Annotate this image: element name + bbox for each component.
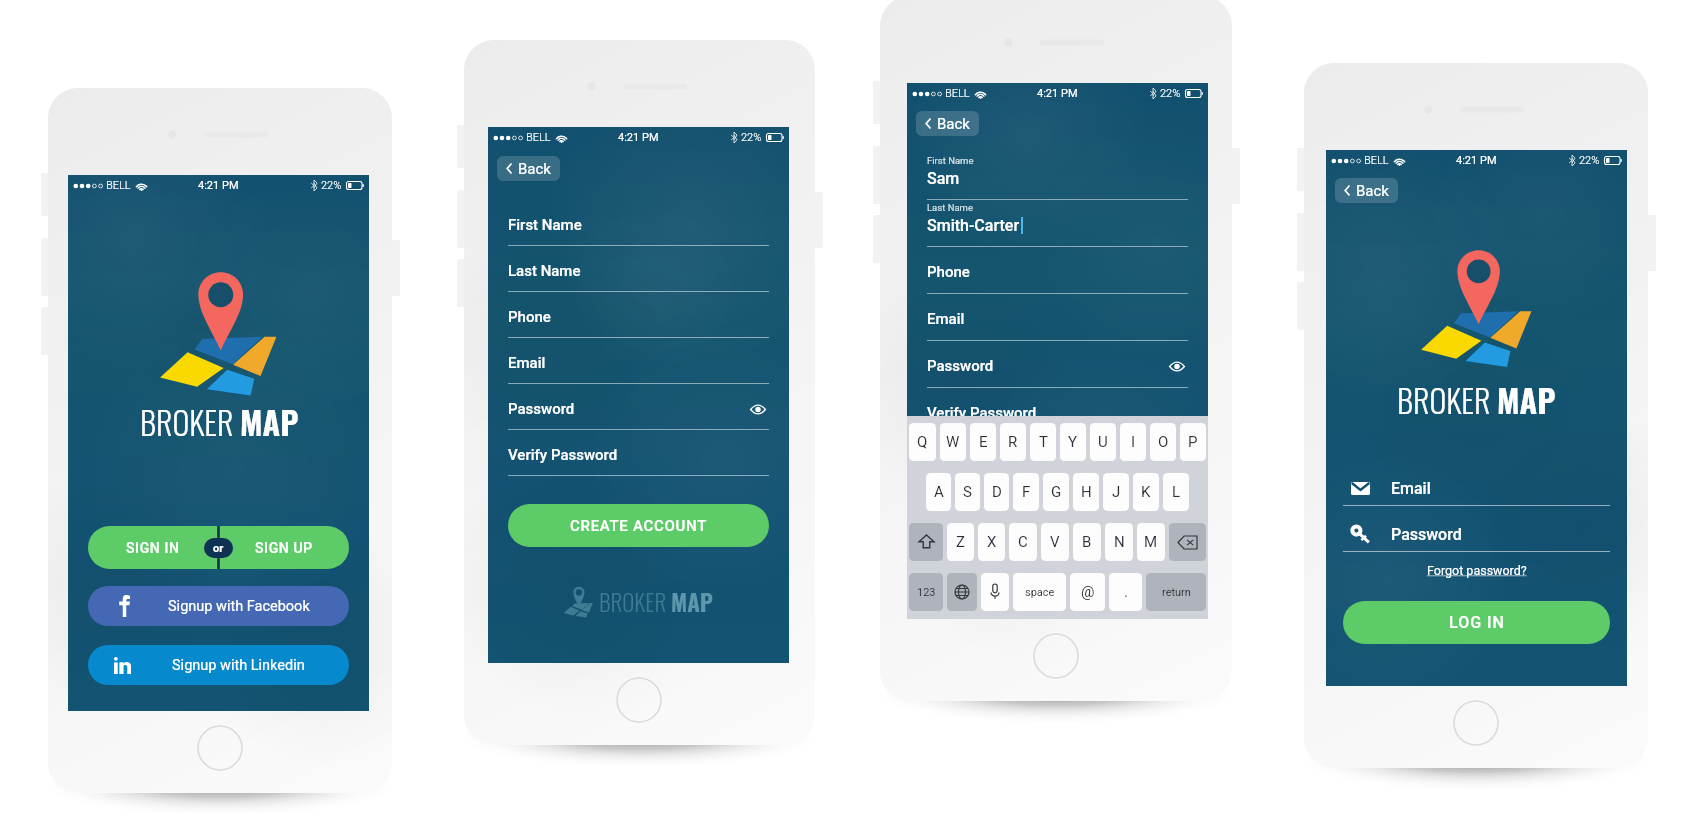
button[interactable]: .	[1109, 573, 1142, 611]
staticText: E	[979, 433, 988, 451]
staticText: First Name	[508, 216, 582, 234]
button[interactable]: Back	[1335, 178, 1398, 203]
staticText: Phone	[508, 308, 551, 326]
button[interactable]: Backspace	[1169, 523, 1206, 561]
staticText: R	[1008, 433, 1018, 451]
button[interactable]: H	[1073, 473, 1099, 511]
button[interactable]: I	[1120, 423, 1146, 461]
button[interactable]: L	[1163, 473, 1189, 511]
button[interactable]: D	[984, 473, 1009, 511]
button[interactable]: Password	[927, 341, 1188, 388]
staticText: Last Name	[508, 262, 581, 280]
button[interactable]: Phone	[927, 247, 1188, 294]
button[interactable]: Signup with Facebook	[88, 586, 349, 626]
button[interactable]: Phone	[508, 292, 769, 338]
staticText: CREATE ACCOUNT	[570, 517, 708, 535]
button[interactable]: C	[1009, 523, 1037, 561]
staticText: S	[963, 483, 972, 501]
button[interactable]: S	[955, 473, 980, 511]
button[interactable]: U	[1090, 423, 1116, 461]
button[interactable]: Email	[1343, 471, 1610, 506]
button[interactable]: K	[1133, 473, 1159, 511]
staticText: Z	[956, 533, 965, 551]
staticText: Back	[1356, 182, 1389, 200]
staticText: U	[1098, 433, 1108, 451]
button[interactable]: 123	[909, 573, 943, 611]
button[interactable]: N	[1105, 523, 1133, 561]
staticText: 4:21 PM	[618, 131, 659, 144]
button[interactable]: First Name	[927, 153, 1188, 200]
staticText: BROKER	[1397, 376, 1497, 423]
button[interactable]: G	[1043, 473, 1069, 511]
staticText: LOG IN	[1449, 613, 1505, 632]
staticText: Y	[1068, 433, 1078, 451]
staticText: Email	[1391, 479, 1431, 498]
button[interactable]: return	[1146, 573, 1206, 611]
button[interactable]: CREATE ACCOUNT	[508, 504, 769, 547]
staticText: I	[1131, 433, 1136, 451]
button[interactable]: SIGN IN	[88, 526, 218, 569]
button[interactable]: Signup with Linkedin	[88, 645, 349, 685]
staticText: 22%	[1579, 154, 1600, 167]
button[interactable]: Verify Password	[508, 430, 769, 476]
button[interactable]: Dictate	[981, 573, 1009, 611]
button[interactable]: space	[1013, 573, 1066, 611]
button[interactable]: Y	[1060, 423, 1086, 461]
staticText: J	[1112, 483, 1121, 501]
staticText: V	[1050, 533, 1060, 551]
button[interactable]: T	[1030, 423, 1056, 461]
staticText: 22%	[321, 179, 342, 192]
staticText: B	[1082, 533, 1092, 551]
staticText: K	[1141, 483, 1151, 501]
staticText: .	[1124, 583, 1128, 601]
button[interactable]: F	[1013, 473, 1039, 511]
staticText: L	[1172, 483, 1181, 501]
button[interactable]: Z	[947, 523, 974, 561]
button[interactable]: First Name	[508, 200, 769, 246]
button[interactable]: Back	[916, 111, 979, 136]
button[interactable]: LOG IN	[1343, 601, 1610, 644]
staticText: T	[1039, 433, 1048, 451]
button[interactable]: V	[1041, 523, 1069, 561]
button[interactable]: J	[1103, 473, 1129, 511]
staticText: X	[987, 533, 997, 551]
staticText: O	[1158, 433, 1169, 451]
button[interactable]: @	[1070, 573, 1105, 611]
button[interactable]: X	[978, 523, 1005, 561]
button[interactable]: Last Name	[508, 246, 769, 292]
staticText: Phone	[927, 263, 970, 281]
staticText: C	[1018, 533, 1028, 551]
button[interactable]: SIGN UP	[218, 526, 349, 569]
staticText: First Name	[927, 155, 974, 166]
staticText: BELL	[945, 87, 970, 100]
staticText: Password	[1391, 525, 1462, 544]
button[interactable]: O	[1150, 423, 1176, 461]
button[interactable]: W	[940, 423, 966, 461]
button[interactable]: B	[1073, 523, 1101, 561]
button[interactable]: Email	[927, 294, 1188, 341]
button[interactable]: Password	[1343, 517, 1610, 552]
button[interactable]: Email	[508, 338, 769, 384]
button[interactable]: Q	[909, 423, 936, 461]
button[interactable]: A	[926, 473, 951, 511]
button[interactable]: Last Name	[927, 200, 1188, 247]
button[interactable]: Password	[508, 384, 769, 430]
staticText: BROKER	[599, 585, 671, 619]
button[interactable]: E	[970, 423, 996, 461]
button[interactable]: R	[1000, 423, 1026, 461]
button[interactable]: M	[1137, 523, 1165, 561]
button[interactable]: Switch keyboard language	[947, 573, 977, 611]
staticText: BELL	[106, 179, 131, 192]
button[interactable]: Back	[497, 156, 560, 181]
staticText: Password	[508, 400, 575, 418]
staticText: 4:21 PM	[198, 179, 239, 192]
staticText: BROKER	[140, 398, 240, 445]
staticText: Q	[917, 433, 928, 451]
button[interactable]: P	[1180, 423, 1206, 461]
button[interactable]: Show password	[747, 400, 769, 418]
button[interactable]: Forgot password?	[1427, 563, 1527, 578]
button[interactable]: Verify Password	[927, 388, 1188, 435]
staticText: Sam	[927, 169, 960, 188]
button[interactable]: Shift	[909, 523, 943, 561]
button[interactable]: Show password	[1166, 357, 1188, 375]
